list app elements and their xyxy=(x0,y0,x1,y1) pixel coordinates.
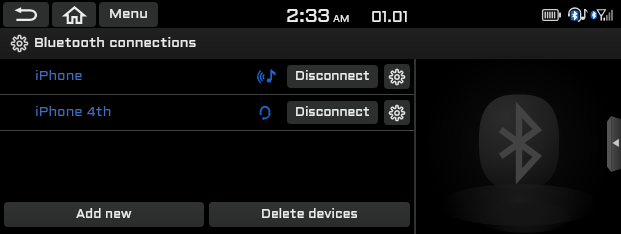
staticText: Bluetooth connections xyxy=(34,37,197,50)
staticText: Delete devices xyxy=(261,209,358,221)
button[interactable]: Menu xyxy=(99,2,158,27)
button[interactable]: Home xyxy=(52,2,96,27)
staticText: iPhone xyxy=(35,70,83,83)
button[interactable]: Device settings xyxy=(384,100,410,125)
button[interactable]: Expand panel xyxy=(607,116,621,172)
staticText: 01.01 xyxy=(371,11,408,25)
staticText: Add new xyxy=(76,209,132,221)
staticText: AM xyxy=(333,15,350,24)
button[interactable]: Back xyxy=(3,2,49,27)
button[interactable]: Device settings xyxy=(384,64,410,89)
button[interactable]: iPhone xyxy=(0,59,414,94)
staticText: iPhone 4th xyxy=(35,106,112,119)
button[interactable]: Disconnect xyxy=(287,65,378,88)
button[interactable]: Delete devices xyxy=(209,202,410,227)
button[interactable]: Add new xyxy=(4,202,204,227)
staticText: 2:33 xyxy=(286,8,330,26)
button[interactable]: Disconnect xyxy=(287,101,378,124)
staticText: Menu xyxy=(109,8,148,21)
staticText: Disconnect xyxy=(295,107,370,119)
button[interactable]: iPhone 4th xyxy=(0,95,414,130)
staticText: Disconnect xyxy=(295,71,370,83)
